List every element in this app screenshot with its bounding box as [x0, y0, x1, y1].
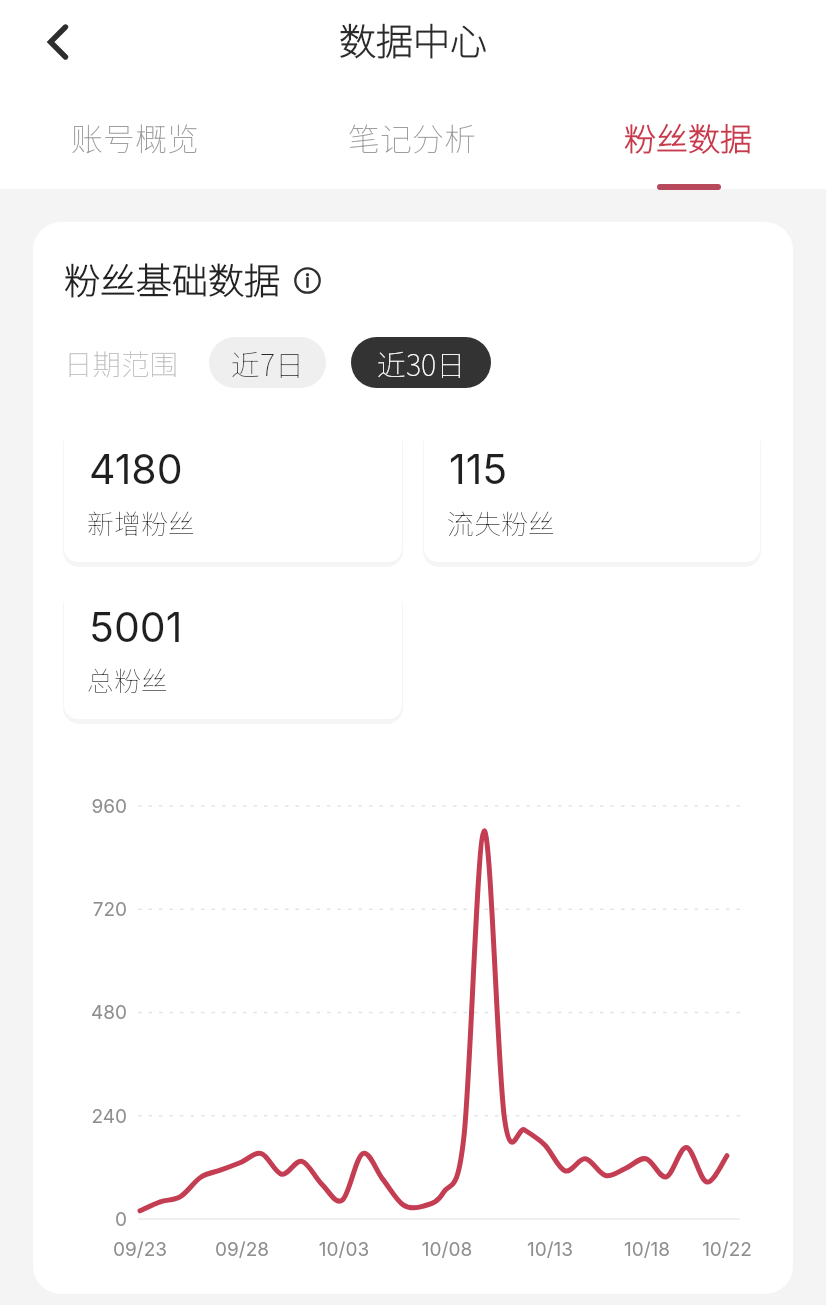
button[interactable]: 115: [424, 424, 760, 562]
staticText: 960: [47, 795, 127, 818]
staticText: 720: [47, 898, 127, 921]
staticText: 总粉丝: [87, 660, 168, 699]
button[interactable]: Info: [291, 264, 323, 296]
staticText: 480: [47, 1001, 127, 1024]
button[interactable]: 近30日: [351, 337, 491, 388]
staticText: 新增粉丝: [87, 503, 195, 542]
staticText: 5001: [89, 602, 183, 652]
staticText: 240: [47, 1105, 127, 1128]
staticText: 09/23: [95, 1238, 185, 1261]
staticText: 近7日: [231, 342, 305, 384]
staticText: 0: [47, 1208, 127, 1231]
button[interactable]: 粉丝数据: [584, 104, 792, 199]
button[interactable]: 近7日: [209, 337, 326, 388]
staticText: 115: [449, 444, 508, 494]
button[interactable]: 账号概览: [31, 104, 239, 199]
staticText: 日期范围: [64, 342, 179, 383]
staticText: 流失粉丝: [447, 503, 555, 542]
staticText: 近30日: [377, 342, 466, 384]
button[interactable]: 笔记分析: [308, 104, 516, 199]
staticText: 10/18: [602, 1238, 692, 1261]
staticText: 数据中心: [339, 12, 487, 60]
staticText: 10/03: [299, 1238, 389, 1261]
staticText: 10/22: [682, 1238, 772, 1261]
staticText: 10/13: [505, 1238, 595, 1261]
staticText: 4180: [89, 444, 183, 494]
staticText: 账号概览: [71, 114, 200, 160]
button[interactable]: 4180: [64, 424, 402, 562]
staticText: 粉丝数据: [624, 114, 753, 160]
staticText: 笔记分析: [348, 114, 477, 160]
staticText: 粉丝基础数据: [64, 252, 281, 304]
staticText: 09/28: [197, 1238, 287, 1261]
button[interactable]: Back: [30, 14, 86, 70]
button[interactable]: 5001: [64, 587, 402, 719]
staticText: 10/08: [402, 1238, 492, 1261]
